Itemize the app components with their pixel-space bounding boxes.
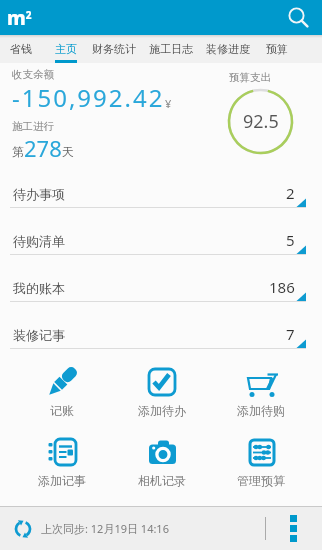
staticText: 相机记录	[138, 473, 186, 488]
staticText: 278	[24, 133, 62, 161]
button[interactable]	[266, 507, 322, 550]
staticText: 上次同步: 12月19日 14:16	[41, 521, 169, 536]
button[interactable]: 待办事项	[0, 161, 322, 208]
staticText: 186	[269, 277, 295, 297]
staticText: 添加记事	[38, 473, 86, 488]
button[interactable]: 记账	[12, 349, 112, 419]
button[interactable]: 添加待购	[211, 349, 310, 419]
button[interactable]: 相机记录	[112, 419, 211, 489]
button[interactable]	[13, 519, 33, 539]
button[interactable]: 预算	[266, 35, 288, 63]
staticText: 财务统计	[92, 42, 136, 56]
button[interactable]: 装修记事	[0, 302, 322, 349]
staticText: 第	[12, 144, 24, 159]
button[interactable]: 财务统计	[92, 35, 136, 63]
button[interactable]: 施工日志	[149, 35, 193, 63]
staticText: 施工进行	[12, 120, 54, 133]
button[interactable]: 添加待办	[112, 349, 211, 419]
button[interactable]: 省钱	[10, 35, 32, 63]
button[interactable]: 添加记事	[12, 419, 112, 489]
button[interactable]: 装修进度	[206, 35, 250, 63]
staticText: 预算	[266, 42, 288, 56]
staticText: 装修记事	[13, 327, 65, 343]
staticText: 待购清单	[13, 233, 65, 249]
button[interactable]: 待购清单	[0, 208, 322, 255]
staticText: 添加待购	[237, 403, 285, 418]
staticText: 我的账本	[13, 280, 65, 296]
button[interactable]: 我的账本	[0, 255, 322, 302]
staticText: 省钱	[10, 42, 32, 56]
staticText: 2	[286, 183, 295, 203]
staticText: 施工日志	[149, 42, 193, 56]
staticText: 预算支出	[229, 71, 271, 84]
staticText: 记账	[50, 403, 74, 418]
staticText: 92.5	[243, 109, 279, 134]
staticText: 主页	[55, 42, 77, 56]
staticText: 装修进度	[206, 42, 250, 56]
staticText: 5	[286, 230, 295, 250]
staticText: 7	[286, 324, 295, 344]
staticText: 待办事项	[13, 186, 65, 202]
staticText: m2	[7, 5, 32, 31]
staticText: -150,992.42	[12, 81, 165, 114]
staticText: 收支余额	[12, 68, 54, 81]
button[interactable]: 主页	[55, 35, 77, 63]
button[interactable]: 管理预算	[211, 419, 310, 489]
staticText: 添加待办	[138, 403, 186, 418]
staticText: ¥	[165, 96, 172, 111]
staticText: 管理预算	[237, 473, 285, 488]
button[interactable]	[287, 0, 322, 35]
staticText: 天	[62, 144, 74, 159]
